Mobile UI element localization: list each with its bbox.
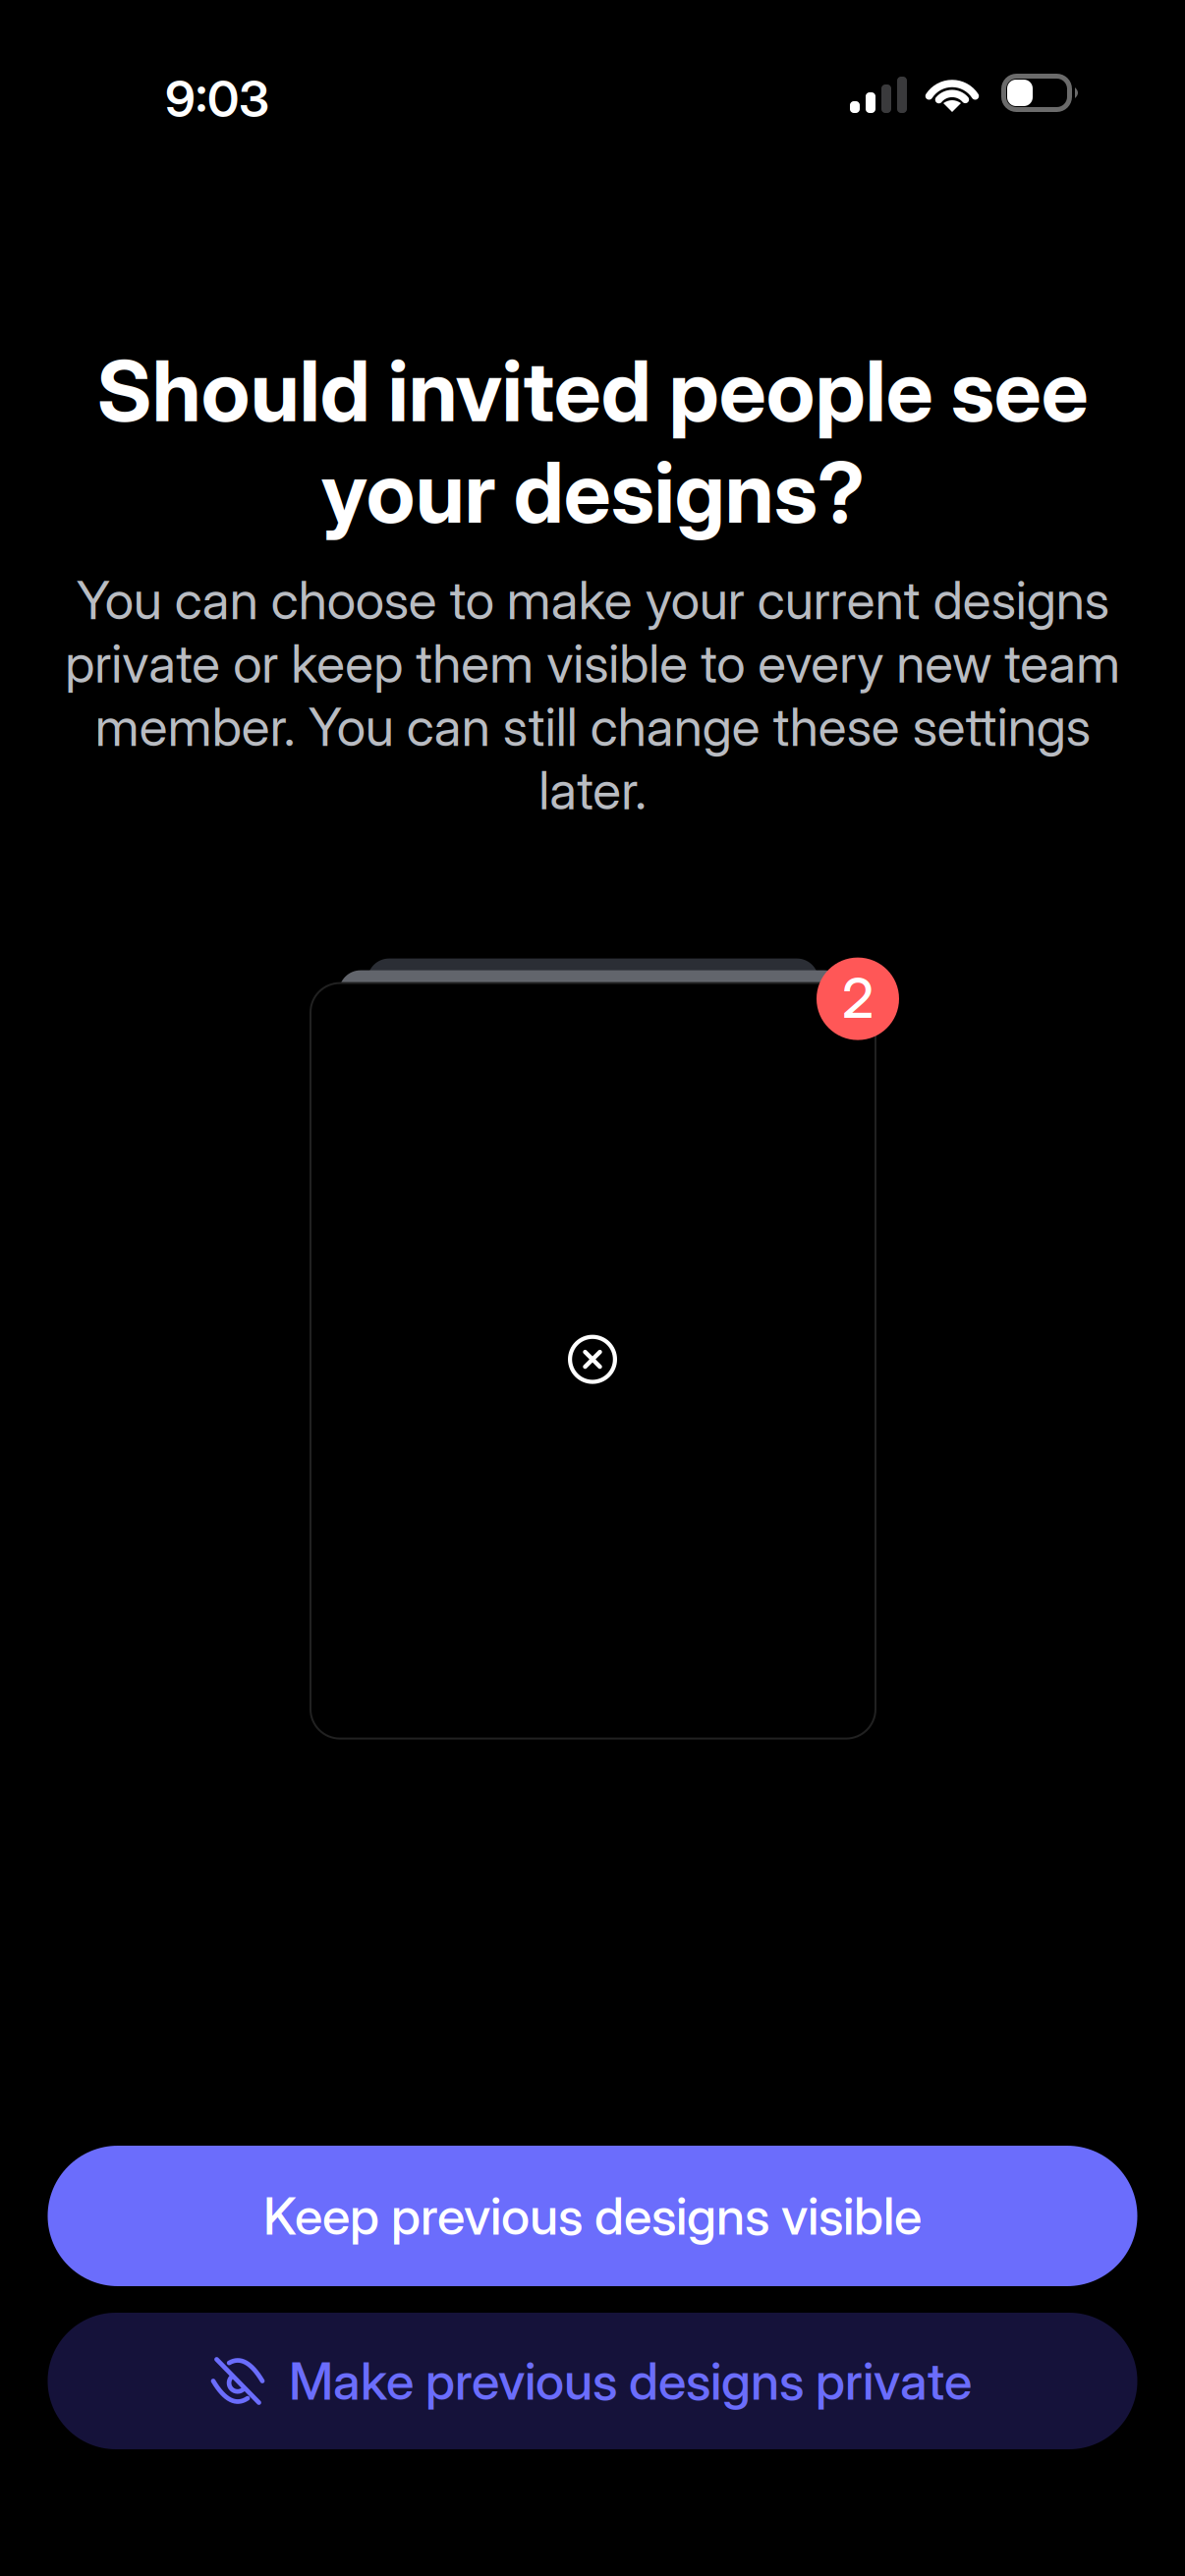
staticText: Should invited people see your designs? xyxy=(97,340,1088,543)
button[interactable]: Keep previous designs visible xyxy=(48,2146,1137,2286)
button[interactable]: Make previous designs private xyxy=(48,2313,1137,2449)
staticText: You can choose to make your current desi… xyxy=(65,568,1120,822)
staticText: 2 xyxy=(842,964,874,1031)
staticText: Keep previous designs visible xyxy=(263,2185,922,2247)
staticText: 9:03 xyxy=(165,69,269,129)
staticText: Make previous designs private xyxy=(289,2350,972,2412)
